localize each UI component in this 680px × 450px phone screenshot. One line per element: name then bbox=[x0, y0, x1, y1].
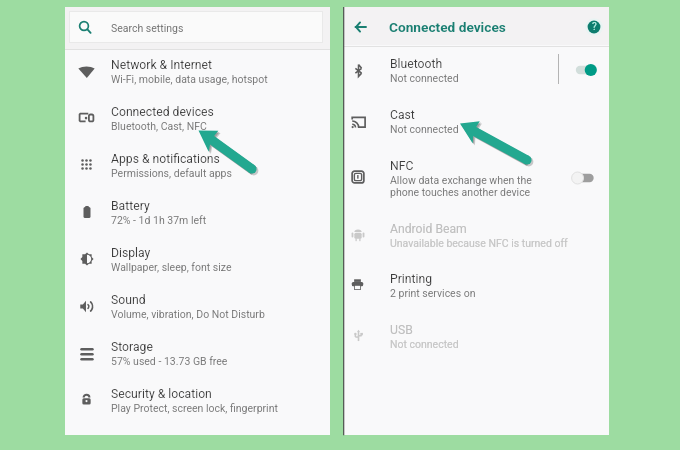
staticText: Security & location bbox=[111, 387, 212, 401]
button[interactable] bbox=[344, 101, 609, 149]
staticText: Play Protect, screen lock, fingerprint bbox=[111, 402, 278, 414]
staticText: Permissions, default apps bbox=[111, 167, 232, 179]
staticText: Unavailable because NFC is turned off bbox=[390, 237, 568, 249]
button[interactable] bbox=[65, 51, 330, 98]
button[interactable]: Turn off bbox=[570, 58, 600, 82]
staticText: 72% - 1d 1h 37m left bbox=[111, 214, 207, 226]
staticText: Not connected bbox=[390, 123, 459, 135]
staticText: Network & Internet bbox=[111, 58, 212, 72]
button[interactable] bbox=[69, 11, 323, 43]
staticText: 2 print services on bbox=[390, 287, 476, 299]
staticText: Wi-Fi, mobile, data usage, hotspot bbox=[111, 73, 268, 85]
staticText: Apps & notifications bbox=[111, 152, 220, 166]
button[interactable] bbox=[65, 380, 330, 427]
staticText: Allow data exchange when the phone touch… bbox=[390, 174, 532, 198]
button[interactable] bbox=[65, 286, 330, 333]
button[interactable] bbox=[65, 333, 330, 380]
staticText: NFC bbox=[390, 159, 414, 173]
button[interactable] bbox=[344, 152, 609, 212]
button[interactable] bbox=[65, 192, 330, 239]
staticText: Printing bbox=[390, 272, 433, 286]
staticText: Android Beam bbox=[390, 222, 467, 236]
staticText: Bluetooth, Cast, NFC bbox=[111, 120, 207, 132]
staticText: Cast bbox=[390, 108, 415, 122]
staticText: Wallpaper, sleep, font size bbox=[111, 261, 232, 273]
button[interactable] bbox=[65, 145, 330, 192]
staticText: Bluetooth bbox=[390, 57, 443, 71]
button[interactable]: Help bbox=[580, 13, 608, 41]
staticText: ? bbox=[592, 21, 597, 33]
button[interactable] bbox=[344, 316, 609, 364]
button[interactable]: Turn on bbox=[570, 166, 600, 190]
staticText: Not connected bbox=[390, 72, 459, 84]
staticText: Volume, vibration, Do Not Disturb bbox=[111, 308, 265, 320]
staticText: Battery bbox=[111, 199, 150, 213]
staticText: Sound bbox=[111, 293, 146, 307]
button[interactable] bbox=[344, 265, 609, 313]
button[interactable] bbox=[344, 50, 609, 98]
button[interactable]: Back bbox=[348, 9, 382, 43]
button[interactable] bbox=[65, 98, 330, 145]
button[interactable] bbox=[344, 215, 609, 263]
button[interactable] bbox=[65, 239, 330, 286]
staticText: Connected devices bbox=[389, 19, 506, 35]
staticText: Storage bbox=[111, 340, 153, 354]
staticText: USB bbox=[390, 323, 413, 337]
staticText: 57% used - 13.73 GB free bbox=[111, 355, 228, 367]
staticText: Connected devices bbox=[111, 105, 214, 119]
staticText: Not connected bbox=[390, 338, 459, 350]
staticText: Display bbox=[111, 246, 151, 260]
staticText: Search settings bbox=[111, 22, 184, 34]
